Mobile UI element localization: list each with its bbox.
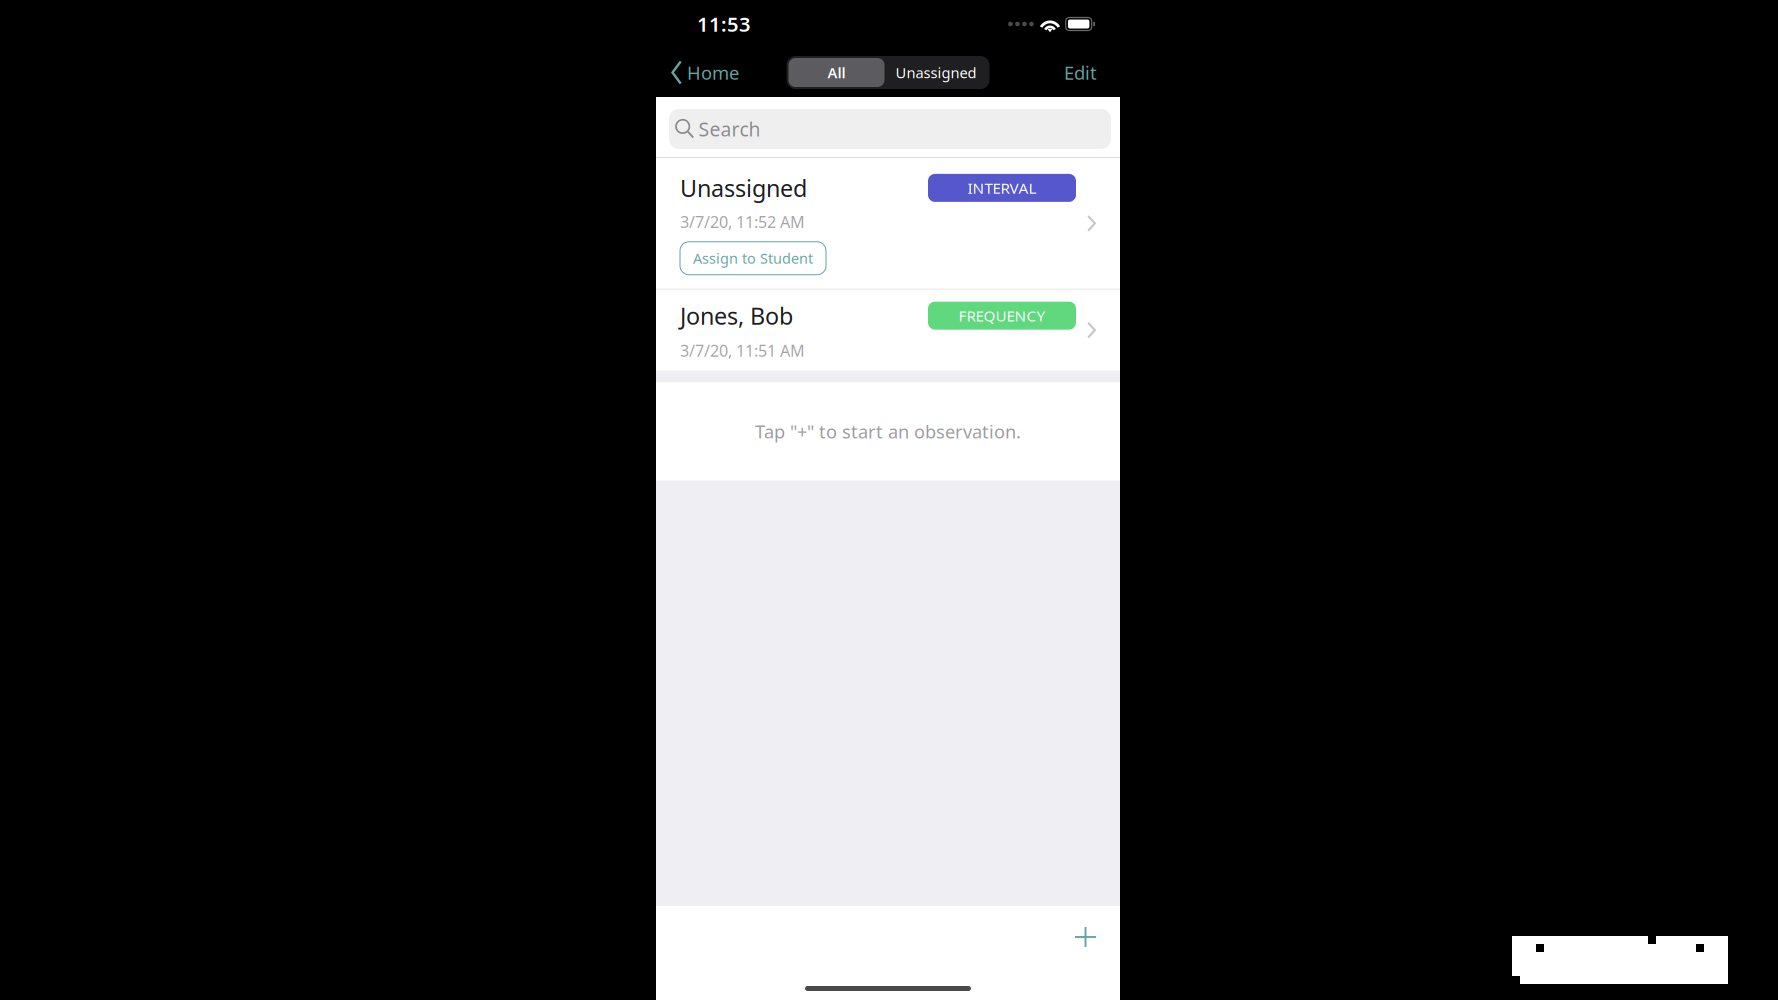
staticText: 3/7/20, 11:51 AM [680, 339, 805, 361]
button[interactable]: Unassigned [884, 58, 987, 87]
staticText: All [827, 62, 845, 82]
button[interactable]: All [788, 58, 884, 87]
staticText: Search [698, 116, 760, 142]
staticText: Jones, Bob [680, 300, 793, 332]
button[interactable]: Edit [1064, 60, 1097, 85]
staticText: INTERVAL [967, 177, 1036, 198]
staticText: Home [687, 60, 739, 85]
staticText: Unassigned [895, 62, 976, 82]
staticText: Edit [1064, 60, 1097, 85]
staticText: 11:53 [697, 10, 751, 38]
button[interactable]: Assign to Student [680, 242, 826, 275]
staticText: Assign to Student [693, 248, 813, 268]
staticText: 3/7/20, 11:52 AM [680, 211, 805, 233]
button[interactable]: Add observation [1075, 906, 1120, 947]
button[interactable]: Unassigned [656, 158, 1120, 289]
staticText: Tap "+" to start an observation. [755, 419, 1021, 444]
button[interactable]: Home [671, 60, 739, 85]
staticText: Unassigned [680, 172, 807, 204]
staticText: FREQUENCY [958, 305, 1045, 326]
button[interactable]: Jones, Bob [656, 290, 1120, 371]
